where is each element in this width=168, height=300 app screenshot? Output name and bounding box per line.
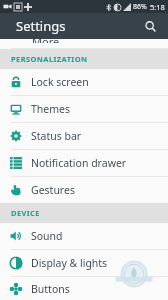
button[interactable]: Buttons bbox=[0, 277, 168, 300]
staticText: Buttons bbox=[31, 282, 70, 296]
staticText: PERSONALIZATION bbox=[11, 54, 88, 64]
staticText: More... bbox=[32, 34, 69, 43]
staticText: Notification drawer bbox=[31, 156, 127, 170]
button[interactable]: Search bbox=[140, 16, 160, 36]
button[interactable]: Gestures bbox=[0, 177, 168, 203]
staticText: 86% bbox=[133, 2, 147, 12]
button[interactable]: Themes bbox=[0, 96, 168, 122]
staticText: 5:18 bbox=[150, 2, 165, 12]
button[interactable]: Notification drawer bbox=[0, 150, 168, 176]
staticText: Sound bbox=[31, 229, 63, 243]
staticText: Gestures bbox=[31, 183, 75, 197]
button[interactable]: Status bar bbox=[0, 123, 168, 149]
staticText: Status bar bbox=[31, 129, 82, 143]
staticText: Display & lights bbox=[31, 256, 108, 270]
button[interactable]: More... bbox=[0, 39, 168, 48]
staticText: Themes bbox=[31, 102, 71, 116]
staticText: Settings bbox=[16, 17, 66, 35]
button[interactable]: Lock screen bbox=[0, 69, 168, 95]
staticText: DEVICE bbox=[11, 208, 40, 218]
button[interactable]: Sound bbox=[0, 223, 168, 249]
staticText: Lock screen bbox=[31, 75, 89, 89]
button[interactable]: Display & lights bbox=[0, 250, 168, 276]
